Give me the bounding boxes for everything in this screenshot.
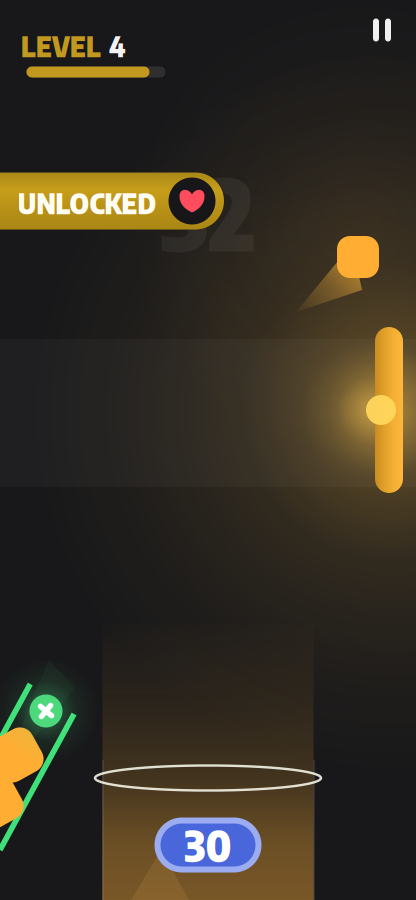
staticText: UNLOCKED bbox=[17, 185, 156, 220]
staticText: LEVEL bbox=[21, 28, 101, 63]
button[interactable]: 30 bbox=[154, 817, 261, 872]
button[interactable]: Add blocks bbox=[0, 659, 98, 763]
staticText: 4 bbox=[109, 28, 125, 63]
button[interactable]: Pause bbox=[361, 6, 403, 53]
staticText: 32 bbox=[160, 151, 255, 273]
staticText: 30 bbox=[184, 818, 231, 872]
